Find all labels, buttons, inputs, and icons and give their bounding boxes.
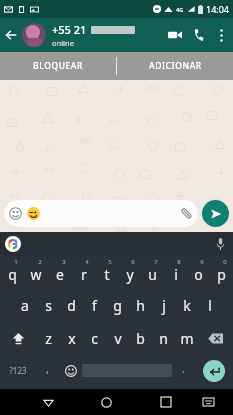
button[interactable]: Google search <box>5 236 21 252</box>
staticText: v <box>114 329 122 348</box>
button[interactable]: More options <box>211 18 231 52</box>
button[interactable]: , <box>36 355 59 386</box>
button[interactable]: ADICIONAR <box>117 52 233 80</box>
button[interactable]: Recent apps <box>150 389 181 415</box>
staticText: ?123 <box>9 365 27 376</box>
staticText: 9 <box>200 258 204 266</box>
button[interactable]: r <box>72 256 95 289</box>
staticText: 6 <box>131 258 135 266</box>
other: Emoji <box>9 207 22 220</box>
staticText: . <box>182 361 185 376</box>
staticText: a <box>21 296 29 315</box>
staticText: 14:04 <box>206 3 230 15</box>
staticText: 4G <box>176 6 184 13</box>
button[interactable]: . <box>172 355 195 386</box>
button[interactable]: v <box>106 322 129 355</box>
button[interactable]: c <box>83 322 106 355</box>
staticText: r <box>81 265 87 284</box>
staticText: 0 <box>223 258 227 266</box>
button[interactable]: q <box>0 256 24 289</box>
staticText: j <box>162 296 166 315</box>
button[interactable]: Back <box>0 18 22 52</box>
button[interactable]: b <box>129 322 152 355</box>
other: Attach <box>180 207 193 220</box>
button[interactable]: Call <box>187 18 211 52</box>
staticText: u <box>148 265 157 284</box>
button[interactable]: i <box>164 256 187 289</box>
staticText: 2 <box>38 258 42 266</box>
button[interactable]: w <box>24 256 48 289</box>
button[interactable]: s <box>37 289 60 322</box>
button[interactable]: a <box>13 289 37 322</box>
button[interactable]: Home <box>91 389 122 415</box>
staticText: 7 <box>154 258 158 266</box>
button[interactable]: d <box>60 289 83 322</box>
staticText: 8 <box>177 258 181 266</box>
staticText: y <box>126 265 134 284</box>
staticText: t <box>104 265 110 284</box>
staticText: , <box>46 361 49 376</box>
button[interactable]: x <box>60 322 83 355</box>
button[interactable]: t <box>95 256 118 289</box>
button[interactable]: h <box>129 289 152 322</box>
staticText: m <box>180 329 194 348</box>
staticText: f <box>92 296 97 315</box>
staticText: ADICIONAR <box>149 60 202 72</box>
staticText: w <box>30 265 42 284</box>
button[interactable]: Video call <box>163 18 187 52</box>
button[interactable]: p <box>210 256 233 289</box>
button[interactable]: Hide keyboard <box>193 389 224 415</box>
button[interactable]: f <box>83 289 106 322</box>
staticText: b <box>136 329 145 348</box>
staticText: 1 <box>14 258 18 266</box>
staticText: online <box>52 38 74 48</box>
staticText: q <box>8 265 17 284</box>
staticText: s <box>45 296 52 315</box>
staticText: n <box>159 329 168 348</box>
button[interactable]: Voice input <box>211 232 229 256</box>
button[interactable]: Shift <box>0 322 36 355</box>
button[interactable]: Send <box>202 200 229 227</box>
staticText: 5 <box>108 258 112 266</box>
button[interactable]: Emoji <box>4 200 198 227</box>
staticText: z <box>45 329 52 348</box>
staticText: h <box>136 296 145 315</box>
button[interactable]: m <box>175 322 198 355</box>
staticText: 3 <box>62 258 66 266</box>
staticText: k <box>183 296 191 315</box>
button[interactable]: ?123 <box>0 355 36 386</box>
button[interactable]: k <box>175 289 198 322</box>
button[interactable]: o <box>187 256 210 289</box>
staticText: c <box>91 329 98 348</box>
button[interactable]: e <box>48 256 72 289</box>
staticText: g <box>113 296 122 315</box>
staticText: e <box>56 265 64 284</box>
button[interactable]: y <box>118 256 141 289</box>
button[interactable]: u <box>141 256 164 289</box>
staticText: +55 21 <box>52 22 90 37</box>
button[interactable]: +55 21 <box>52 22 163 48</box>
staticText: d <box>67 296 76 315</box>
button[interactable]: Emoji keyboard <box>59 355 82 386</box>
staticText: x <box>68 329 76 348</box>
button[interactable]: l <box>198 289 221 322</box>
staticText: i <box>174 265 178 284</box>
button[interactable]: g <box>106 289 129 322</box>
staticText: l <box>208 296 212 315</box>
staticText: BLOQUEAR <box>33 60 84 72</box>
button[interactable]: j <box>152 289 175 322</box>
staticText: o <box>194 265 203 284</box>
button[interactable]: Backspace <box>198 322 233 355</box>
button[interactable]: n <box>152 322 175 355</box>
button[interactable]: z <box>36 322 60 355</box>
button[interactable]: Back <box>33 389 63 415</box>
staticText: 4 <box>85 258 89 266</box>
button[interactable]: Enter <box>203 360 225 382</box>
staticText: p <box>217 265 226 284</box>
button[interactable]: BLOQUEAR <box>0 52 116 80</box>
